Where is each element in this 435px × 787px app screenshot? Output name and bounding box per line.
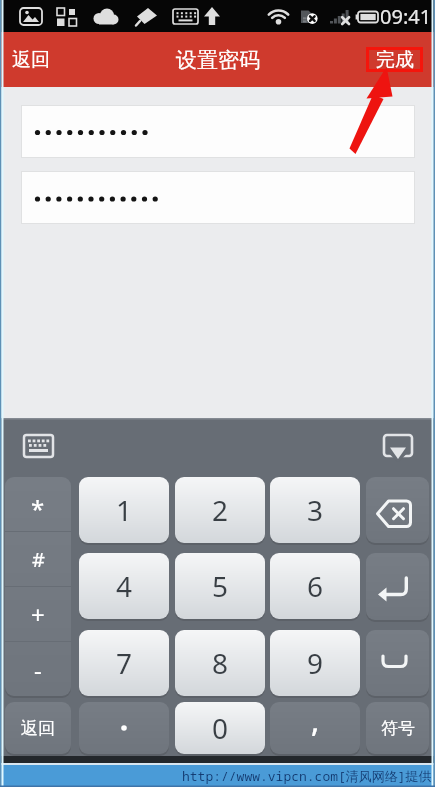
staticText: 6 — [307, 567, 324, 605]
button[interactable]: 符号 — [366, 702, 429, 754]
button[interactable]: 4 — [79, 553, 169, 619]
staticText: 3 — [307, 491, 324, 529]
button[interactable]: 7 — [79, 630, 169, 696]
staticText: 设置密码 — [176, 47, 260, 73]
staticText: http://www.vipcn.com[清风网络]提供 — [182, 767, 432, 785]
button[interactable] — [21, 171, 415, 224]
button[interactable]: - — [5, 642, 71, 696]
button[interactable]: 完成 — [366, 47, 423, 72]
staticText: 1 — [116, 491, 133, 529]
button[interactable]: 8 — [175, 630, 265, 696]
staticText: 9 — [307, 644, 324, 682]
staticText: # — [32, 546, 45, 573]
button[interactable] — [366, 477, 429, 543]
staticText: * — [31, 492, 45, 525]
staticText: 7 — [116, 644, 133, 682]
staticText: 返回 — [21, 718, 55, 739]
staticText: 2 — [212, 491, 229, 529]
button[interactable]: , — [270, 702, 360, 754]
button[interactable]: 0 — [175, 702, 265, 754]
staticText: - — [34, 653, 42, 686]
staticText: + — [31, 598, 45, 631]
staticText: 09:41 — [380, 3, 432, 30]
staticText: 符号 — [381, 718, 415, 739]
button[interactable]: 1 — [79, 477, 169, 543]
button[interactable] — [79, 702, 169, 754]
button[interactable]: 返回 — [5, 702, 71, 754]
staticText: 8 — [212, 644, 229, 682]
staticText: 0 — [212, 709, 229, 747]
button[interactable]: * — [5, 477, 71, 531]
button[interactable] — [21, 105, 415, 158]
button[interactable]: 3 — [270, 477, 360, 543]
staticText: 返回 — [12, 48, 50, 72]
staticText: 完成 — [376, 48, 414, 72]
button[interactable] — [366, 630, 429, 696]
staticText: 4 — [116, 567, 133, 605]
button[interactable]: 返回 — [6, 42, 56, 78]
staticText: , — [311, 702, 320, 741]
button[interactable]: 5 — [175, 553, 265, 619]
button[interactable] — [366, 553, 429, 620]
button[interactable]: 9 — [270, 630, 360, 696]
staticText: 5 — [212, 567, 229, 605]
button[interactable]: # — [5, 532, 71, 586]
button[interactable]: 6 — [270, 553, 360, 619]
button[interactable]: + — [5, 587, 71, 641]
button[interactable]: 2 — [175, 477, 265, 543]
